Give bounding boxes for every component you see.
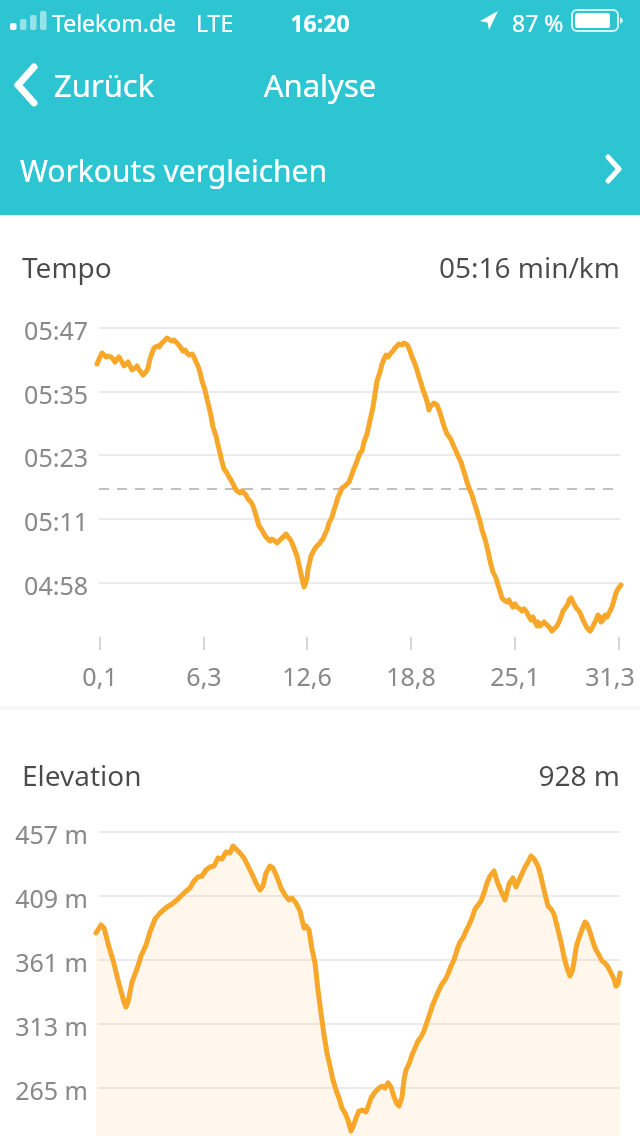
staticText: Zurück [54, 64, 155, 106]
staticText: 31,3 [570, 659, 640, 693]
button[interactable]: Zurück [0, 56, 250, 114]
staticText: Workouts vergleichen [20, 150, 328, 191]
staticText: 928 m [0, 756, 620, 794]
staticText: LTE [196, 7, 234, 38]
staticText: 16:20 [0, 7, 640, 38]
staticText: 12,6 [267, 659, 347, 693]
staticText: 05:11 [0, 504, 88, 538]
staticText: 6,3 [164, 659, 244, 693]
staticText: 04:58 [0, 568, 88, 602]
staticText: 25,1 [475, 659, 555, 693]
staticText: Analyse [0, 64, 640, 106]
staticText: 409 m [0, 881, 88, 915]
staticText: 313 m [0, 1009, 88, 1043]
staticText: 361 m [0, 945, 88, 979]
staticText: 05:35 [0, 377, 88, 411]
staticText: 05:23 [0, 440, 88, 474]
staticText: Elevation [22, 756, 142, 794]
staticText: 87 % [512, 7, 564, 38]
staticText: 05:47 [0, 313, 88, 347]
staticText: Tempo [22, 248, 112, 286]
staticText: 05:16 min/km [0, 248, 620, 286]
staticText: 457 m [0, 817, 88, 851]
staticText: 0,1 [60, 659, 140, 693]
staticText: 265 m [0, 1073, 88, 1107]
staticText: Telekom.de [52, 7, 177, 38]
button[interactable]: Workouts vergleichen [0, 138, 640, 200]
staticText: 18,8 [371, 659, 451, 693]
